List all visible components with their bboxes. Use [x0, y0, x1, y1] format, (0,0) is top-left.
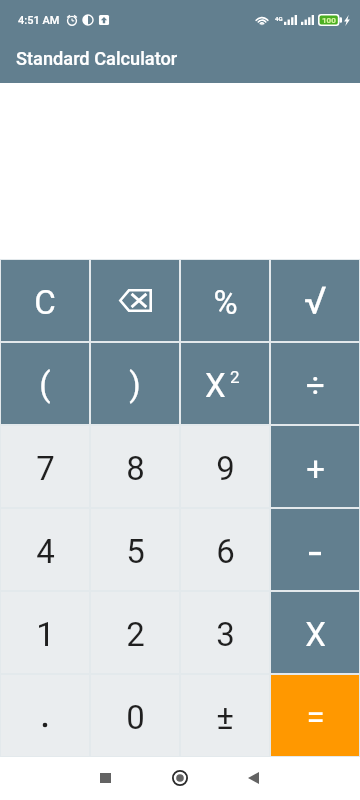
staticText: √	[304, 279, 327, 324]
button[interactable]: 8	[91, 426, 179, 507]
button[interactable]: =	[271, 675, 359, 756]
button[interactable]: 1	[1, 592, 89, 673]
other: Decimal point	[39, 704, 51, 728]
staticText: )	[129, 365, 141, 404]
staticText: 2	[230, 367, 240, 387]
button[interactable]: Back	[231, 756, 275, 799]
button[interactable]: C	[1, 260, 89, 341]
staticText: 3	[216, 615, 235, 654]
button[interactable]: Square	[181, 343, 269, 424]
button[interactable]: ÷	[271, 343, 359, 424]
button[interactable]: +	[271, 426, 359, 507]
button[interactable]: 9	[181, 426, 269, 507]
button[interactable]: Square root	[271, 260, 359, 341]
staticText: 4:51 AM	[18, 14, 60, 27]
staticText: 9	[216, 449, 235, 488]
staticText: ÷	[306, 366, 325, 405]
button[interactable]: X	[271, 592, 359, 673]
staticText: Standard Calculator	[16, 48, 178, 69]
staticText: 100	[322, 16, 336, 25]
staticText: =	[306, 698, 325, 737]
button[interactable]: Decimal point	[1, 675, 89, 756]
button[interactable]: 2	[91, 592, 179, 673]
button[interactable]: (	[1, 343, 89, 424]
button[interactable]: Standard Calculator	[0, 34, 360, 83]
button[interactable]: %	[181, 260, 269, 341]
staticText: 5	[126, 532, 145, 571]
button[interactable]: Backspace	[91, 260, 179, 341]
staticText: C	[34, 283, 56, 322]
button[interactable]: 7	[1, 426, 89, 507]
button[interactable]: ±	[181, 675, 269, 756]
other: Square	[205, 366, 240, 405]
other: Minus	[309, 539, 321, 561]
button[interactable]: 6	[181, 509, 269, 590]
button[interactable]: Home	[158, 756, 202, 799]
staticText: ±	[216, 698, 234, 737]
button[interactable]: 5	[91, 509, 179, 590]
button[interactable]: 4	[1, 509, 89, 590]
other: Backspace	[119, 289, 152, 312]
button[interactable]: 3	[181, 592, 269, 673]
staticText: X	[205, 366, 226, 405]
staticText: X	[305, 615, 326, 654]
staticText: 2	[126, 615, 145, 654]
staticText: 6	[216, 532, 235, 571]
staticText: 8	[126, 449, 145, 488]
staticText: +	[306, 449, 325, 488]
button[interactable]: Recent apps	[83, 756, 127, 799]
button[interactable]: Minus	[271, 509, 359, 590]
button[interactable]: )	[91, 343, 179, 424]
staticText: (	[39, 365, 51, 404]
staticText: 4G	[275, 15, 283, 22]
staticText: 0	[126, 698, 145, 737]
staticText: 7	[36, 449, 55, 488]
button[interactable]: 0	[91, 675, 179, 756]
staticText: 4	[36, 532, 55, 571]
staticText: %	[213, 283, 238, 322]
staticText: 1	[36, 615, 55, 654]
